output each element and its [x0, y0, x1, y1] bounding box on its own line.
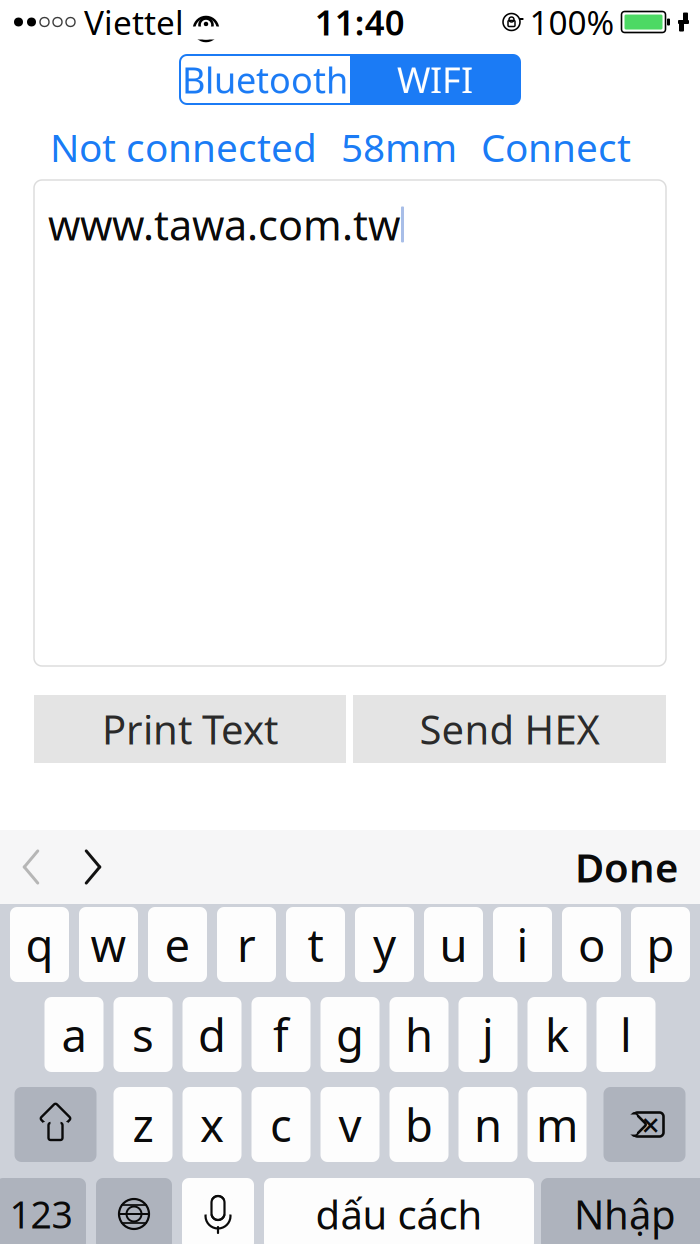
button[interactable]: Previous field	[0, 830, 62, 904]
staticText: e	[164, 914, 190, 975]
button[interactable]: q	[10, 907, 69, 982]
button[interactable]: p	[631, 907, 690, 982]
staticText: Connect	[481, 121, 631, 173]
button[interactable]: Shift	[14, 1087, 96, 1162]
button[interactable]: m	[527, 1087, 586, 1162]
button[interactable]: n	[458, 1087, 517, 1162]
staticText: n	[474, 1094, 502, 1155]
button[interactable]: Print Text	[34, 695, 346, 763]
staticText: t	[307, 914, 323, 975]
staticText: Viettel	[84, 0, 184, 44]
button[interactable]: d	[182, 997, 241, 1072]
staticText: z	[132, 1094, 153, 1155]
staticText: f	[273, 1004, 289, 1065]
staticText: www.tawa.com.tw	[48, 197, 400, 252]
button[interactable]: Next keyboard	[96, 1178, 172, 1244]
staticText: r	[237, 914, 256, 975]
staticText: m	[536, 1094, 578, 1155]
button[interactable]: Dictation	[182, 1178, 254, 1244]
staticText: Bluetooth	[182, 56, 348, 103]
button[interactable]: Send HEX	[353, 695, 666, 763]
button[interactable]: Connect	[481, 121, 631, 173]
staticText: i	[516, 914, 528, 975]
button[interactable]: t	[286, 907, 345, 982]
button[interactable]: z	[113, 1087, 172, 1162]
button[interactable]: g	[320, 997, 379, 1072]
button[interactable]: v	[320, 1087, 379, 1162]
button[interactable]: f	[251, 997, 310, 1072]
button[interactable]: r	[217, 907, 276, 982]
staticText: x	[200, 1094, 224, 1155]
button[interactable]: u	[424, 907, 483, 982]
staticText: k	[545, 1004, 569, 1065]
button[interactable]: Done	[575, 830, 700, 904]
button[interactable]: k	[527, 997, 586, 1072]
staticText: WIFI	[397, 56, 473, 103]
staticText: Send HEX	[419, 702, 599, 755]
button[interactable]: dấu cách	[264, 1178, 534, 1244]
button[interactable]: o	[562, 907, 621, 982]
staticText: a	[61, 1004, 86, 1065]
button[interactable]: 123	[0, 1178, 86, 1244]
button[interactable]: e	[148, 907, 207, 982]
button[interactable]: w	[79, 907, 138, 982]
staticText: b	[405, 1094, 433, 1155]
staticText: g	[336, 1004, 364, 1065]
staticText: v	[338, 1094, 361, 1155]
staticText: j	[482, 1004, 494, 1065]
button[interactable]: l	[596, 997, 655, 1072]
staticText: c	[270, 1094, 292, 1155]
button[interactable]: Delete	[603, 1087, 685, 1162]
button[interactable]: Bluetooth	[180, 55, 350, 104]
button[interactable]: j	[458, 997, 517, 1072]
staticText: 58mm	[341, 121, 457, 173]
button[interactable]: c	[251, 1087, 310, 1162]
staticText: l	[620, 1004, 632, 1065]
button[interactable]: h	[389, 997, 448, 1072]
button[interactable]: i	[493, 907, 552, 982]
button[interactable]: x	[182, 1087, 241, 1162]
staticText: p	[646, 914, 674, 975]
button[interactable]: s	[113, 997, 172, 1072]
button[interactable]: 58mm	[341, 121, 457, 173]
button[interactable]: Next field	[62, 830, 124, 904]
staticText: s	[132, 1004, 154, 1065]
staticText: dấu cách	[315, 1187, 482, 1240]
button[interactable]: b	[389, 1087, 448, 1162]
staticText: 11:40	[315, 0, 405, 45]
staticText: h	[405, 1004, 433, 1065]
staticText: 100%	[529, 0, 614, 44]
staticText: d	[198, 1004, 226, 1065]
staticText: ×	[641, 1103, 659, 1146]
staticText: Done	[575, 840, 678, 893]
button[interactable]: WIFI	[350, 55, 520, 104]
staticText: u	[439, 914, 467, 975]
staticText: Not connected	[50, 121, 317, 173]
staticText: Nhập	[574, 1187, 676, 1240]
staticText: o	[578, 914, 605, 975]
button[interactable]: a	[44, 997, 103, 1072]
staticText: w	[90, 914, 126, 975]
button[interactable]: Not connected	[50, 121, 317, 173]
staticText: y	[373, 914, 396, 975]
button[interactable]: Nhập	[541, 1178, 700, 1244]
button[interactable]: y	[355, 907, 414, 982]
staticText: Print Text	[102, 702, 278, 755]
staticText: 123	[9, 1189, 72, 1239]
staticText: q	[25, 914, 53, 975]
